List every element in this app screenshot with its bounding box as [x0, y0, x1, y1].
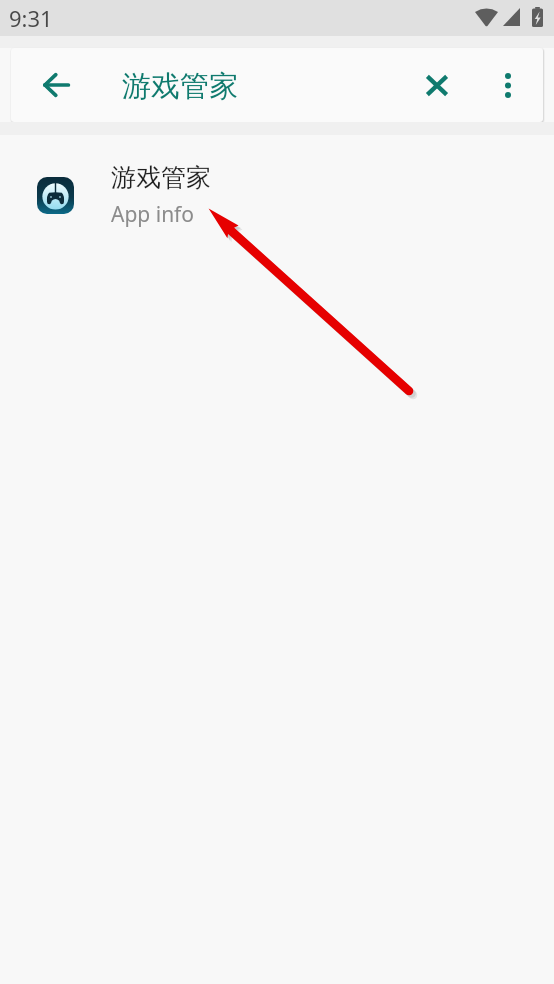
button[interactable]: Clear search [414, 62, 460, 108]
button[interactable]: Back [36, 65, 76, 105]
staticText: 游戏管家 [111, 162, 211, 193]
button[interactable]: 游戏管家 [0, 135, 554, 255]
staticText: 9:31 [9, 3, 53, 33]
staticText: 游戏管家 [122, 68, 238, 105]
staticText: App info [111, 200, 195, 229]
button[interactable]: More options [485, 62, 531, 108]
